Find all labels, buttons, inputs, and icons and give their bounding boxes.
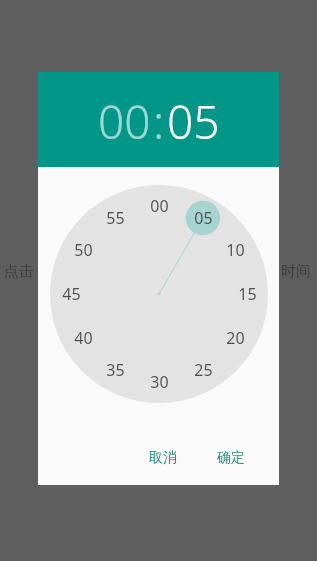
staticText: 30 [150, 371, 169, 393]
button[interactable]: 00 [142, 189, 176, 223]
staticText: 25 [194, 359, 213, 381]
button[interactable]: 35 [98, 353, 132, 387]
staticText: 35 [106, 359, 125, 381]
button[interactable]: 10 [218, 233, 252, 267]
button[interactable]: 05 [167, 90, 220, 153]
staticText: 45 [62, 283, 81, 305]
staticText: 时间 [281, 262, 311, 281]
button[interactable]: 45 [54, 277, 88, 311]
button[interactable]: 40 [66, 321, 100, 355]
staticText: 15 [238, 283, 257, 305]
staticText: 10 [226, 239, 245, 261]
staticText: 00 [150, 195, 169, 217]
button[interactable]: 20 [218, 321, 252, 355]
staticText: 55 [106, 207, 125, 229]
button[interactable]: 15 [230, 277, 264, 311]
staticText: 20 [226, 327, 245, 349]
button[interactable]: 25 [186, 353, 220, 387]
staticText: 确定 [217, 449, 245, 467]
button[interactable]: 取消 [137, 441, 189, 475]
staticText: 40 [74, 327, 93, 349]
button[interactable]: 00 [98, 90, 151, 153]
staticText: 05 [194, 207, 213, 229]
staticText: 点击 [4, 262, 34, 281]
staticText: : [153, 90, 165, 153]
staticText: 50 [74, 239, 93, 261]
button[interactable]: 05 [186, 201, 220, 235]
button[interactable]: 确定 [205, 441, 257, 475]
staticText: 取消 [149, 449, 177, 467]
button[interactable]: Minute picker clock [50, 185, 268, 403]
button[interactable]: 50 [66, 233, 100, 267]
button[interactable]: 55 [98, 201, 132, 235]
button[interactable]: 30 [142, 365, 176, 399]
